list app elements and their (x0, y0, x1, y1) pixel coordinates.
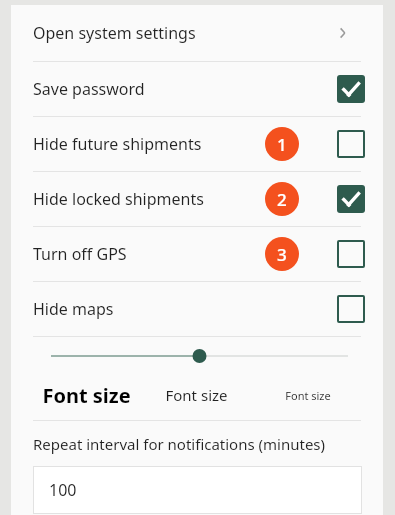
staticText: Font size (285, 388, 331, 403)
staticText: 100 (49, 479, 77, 501)
staticText: Font size (42, 382, 131, 409)
staticText: Hide maps (33, 298, 114, 320)
staticText: Font size (165, 385, 228, 405)
button[interactable]: Turn off GPS (11, 227, 383, 281)
staticText: 2 (277, 188, 287, 211)
button[interactable]: Font size slider (11, 337, 383, 375)
staticText: Hide future shipments (33, 133, 202, 155)
button[interactable]: Hide future shipments (11, 117, 383, 171)
staticText: Repeat interval for notifications (minut… (33, 434, 326, 454)
staticText: Turn off GPS (33, 243, 127, 265)
staticText: Hide locked shipments (33, 188, 204, 210)
staticText: 3 (277, 243, 287, 266)
button[interactable]: 100 (33, 466, 362, 514)
staticText: Open system settings (33, 22, 196, 44)
staticText: 1 (277, 133, 287, 156)
button[interactable]: Save password (11, 62, 383, 116)
other: Open system settings (336, 26, 350, 40)
button[interactable]: Open system settings (11, 5, 383, 61)
staticText: Save password (33, 78, 145, 100)
button[interactable]: Hide maps (11, 282, 383, 336)
button[interactable]: Hide locked shipments (11, 172, 383, 226)
